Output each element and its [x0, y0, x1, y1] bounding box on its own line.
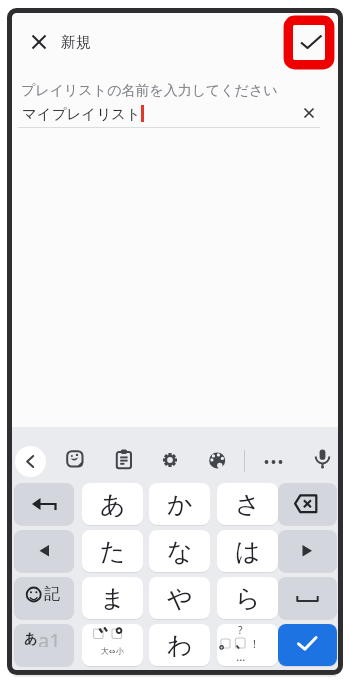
button[interactable]: あ	[14, 624, 74, 666]
button[interactable]: さ	[217, 483, 278, 525]
button[interactable]	[278, 624, 337, 666]
button[interactable]	[23, 26, 55, 58]
button[interactable]	[162, 452, 178, 468]
staticText: あ	[100, 489, 126, 520]
button[interactable]	[65, 449, 85, 469]
button[interactable]	[278, 577, 337, 619]
staticText: さ	[235, 489, 261, 520]
button[interactable]	[18, 78, 332, 128]
staticText: か	[167, 489, 193, 520]
staticText: あ	[24, 630, 37, 646]
button[interactable]: 記	[14, 577, 74, 619]
button[interactable]: あ	[82, 483, 143, 525]
button[interactable]: 大⇔小	[82, 624, 143, 666]
staticText: 新規	[61, 33, 91, 51]
button[interactable]	[14, 530, 74, 572]
button[interactable]: ?	[217, 624, 278, 666]
staticText: プレイリストの名前を入力してください	[21, 82, 278, 98]
staticText: 記	[44, 584, 60, 604]
staticText: a1	[38, 627, 61, 647]
staticText: ら	[235, 583, 261, 614]
button[interactable]: ま	[82, 577, 143, 619]
button[interactable]: ら	[217, 577, 278, 619]
staticText: は	[235, 536, 261, 567]
staticText: た	[100, 536, 126, 567]
button[interactable]	[115, 448, 133, 470]
button[interactable]	[278, 483, 337, 525]
button[interactable]: な	[149, 530, 210, 572]
button[interactable]: は	[217, 530, 278, 572]
button[interactable]	[15, 446, 46, 477]
button[interactable]	[14, 483, 74, 525]
staticText: !	[253, 637, 256, 650]
staticText: わ	[167, 630, 193, 661]
staticText: マイプレイリスト	[22, 105, 141, 123]
button[interactable]: た	[82, 530, 143, 572]
button[interactable]	[209, 452, 226, 469]
staticText: や	[167, 583, 193, 614]
button[interactable]: や	[149, 577, 210, 619]
staticText: 大⇔小	[101, 646, 124, 656]
staticText: ?	[238, 624, 243, 636]
staticText: ま	[100, 583, 126, 614]
button[interactable]	[294, 27, 324, 57]
button[interactable]	[314, 446, 331, 472]
staticText: な	[167, 536, 193, 567]
button[interactable]	[297, 101, 321, 125]
button[interactable]	[278, 530, 337, 572]
button[interactable]	[264, 458, 283, 466]
button[interactable]: わ	[149, 624, 210, 666]
button[interactable]: か	[149, 483, 210, 525]
